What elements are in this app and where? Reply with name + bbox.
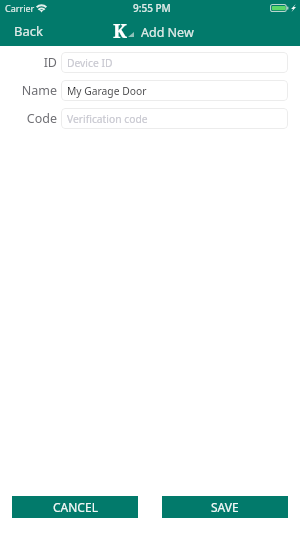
- button[interactable]: Back: [0, 18, 57, 43]
- staticText: My Garage Door: [67, 84, 147, 98]
- staticText: Back: [14, 22, 43, 37]
- staticText: Code: [0, 110, 57, 127]
- staticText: ID: [0, 54, 57, 71]
- staticText: Device ID: [67, 56, 113, 70]
- button[interactable]: Device ID: [61, 52, 288, 73]
- staticText: K: [113, 18, 127, 43]
- staticText: 9:55 PM: [133, 1, 171, 15]
- staticText: Carrier: [5, 2, 35, 14]
- staticText: Add New: [141, 24, 194, 41]
- other: Battery charging: [270, 4, 289, 12]
- staticText: SAVE: [211, 499, 239, 515]
- staticText: CANCEL: [53, 499, 98, 515]
- other: Wi-Fi: [36, 4, 47, 13]
- button[interactable]: CANCEL: [12, 496, 138, 518]
- staticText: Verification code: [67, 112, 148, 126]
- button[interactable]: My Garage Door: [61, 80, 288, 101]
- button[interactable]: SAVE: [162, 496, 288, 518]
- button[interactable]: Verification code: [61, 108, 288, 129]
- staticText: Name: [0, 82, 57, 99]
- other: Kisi logo: [113, 18, 134, 43]
